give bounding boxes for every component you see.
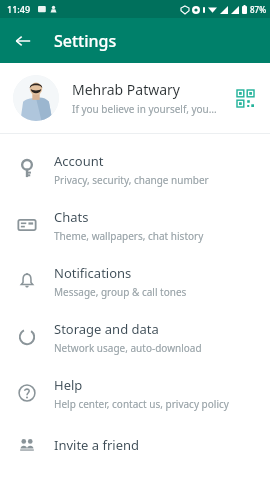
staticText: Invite a friend (54, 436, 140, 454)
staticText: Account (54, 152, 104, 170)
staticText: 11:49 (7, 3, 31, 15)
button[interactable]: Invite a friend (0, 421, 270, 469)
staticText: Network usage, auto-download (54, 341, 202, 355)
staticText: Help center, contact us, privacy policy (54, 397, 229, 411)
button[interactable]: Mehrab Patwary (0, 63, 270, 133)
staticText: Notifications (54, 264, 132, 282)
staticText: Theme, wallpapers, chat history (54, 229, 204, 243)
button[interactable]: Account (0, 141, 270, 197)
staticText: Settings (54, 30, 117, 52)
button[interactable]: Chats (0, 197, 270, 253)
staticText: Message, group & call tones (54, 285, 187, 299)
staticText: Chats (54, 208, 89, 226)
staticText: If you believe in yourself, you… (72, 102, 217, 116)
staticText: Storage and data (54, 320, 159, 338)
staticText: Help (54, 376, 83, 394)
button[interactable]: Notifications (0, 253, 270, 309)
staticText: Privacy, security, change number (54, 173, 209, 187)
button[interactable]: QR code (230, 83, 260, 113)
staticText: 87% (250, 4, 266, 15)
button[interactable]: Storage and data (0, 309, 270, 365)
button[interactable]: Help (0, 365, 270, 421)
button[interactable]: Back (6, 24, 40, 58)
staticText: Mehrab Patwary (72, 80, 181, 99)
